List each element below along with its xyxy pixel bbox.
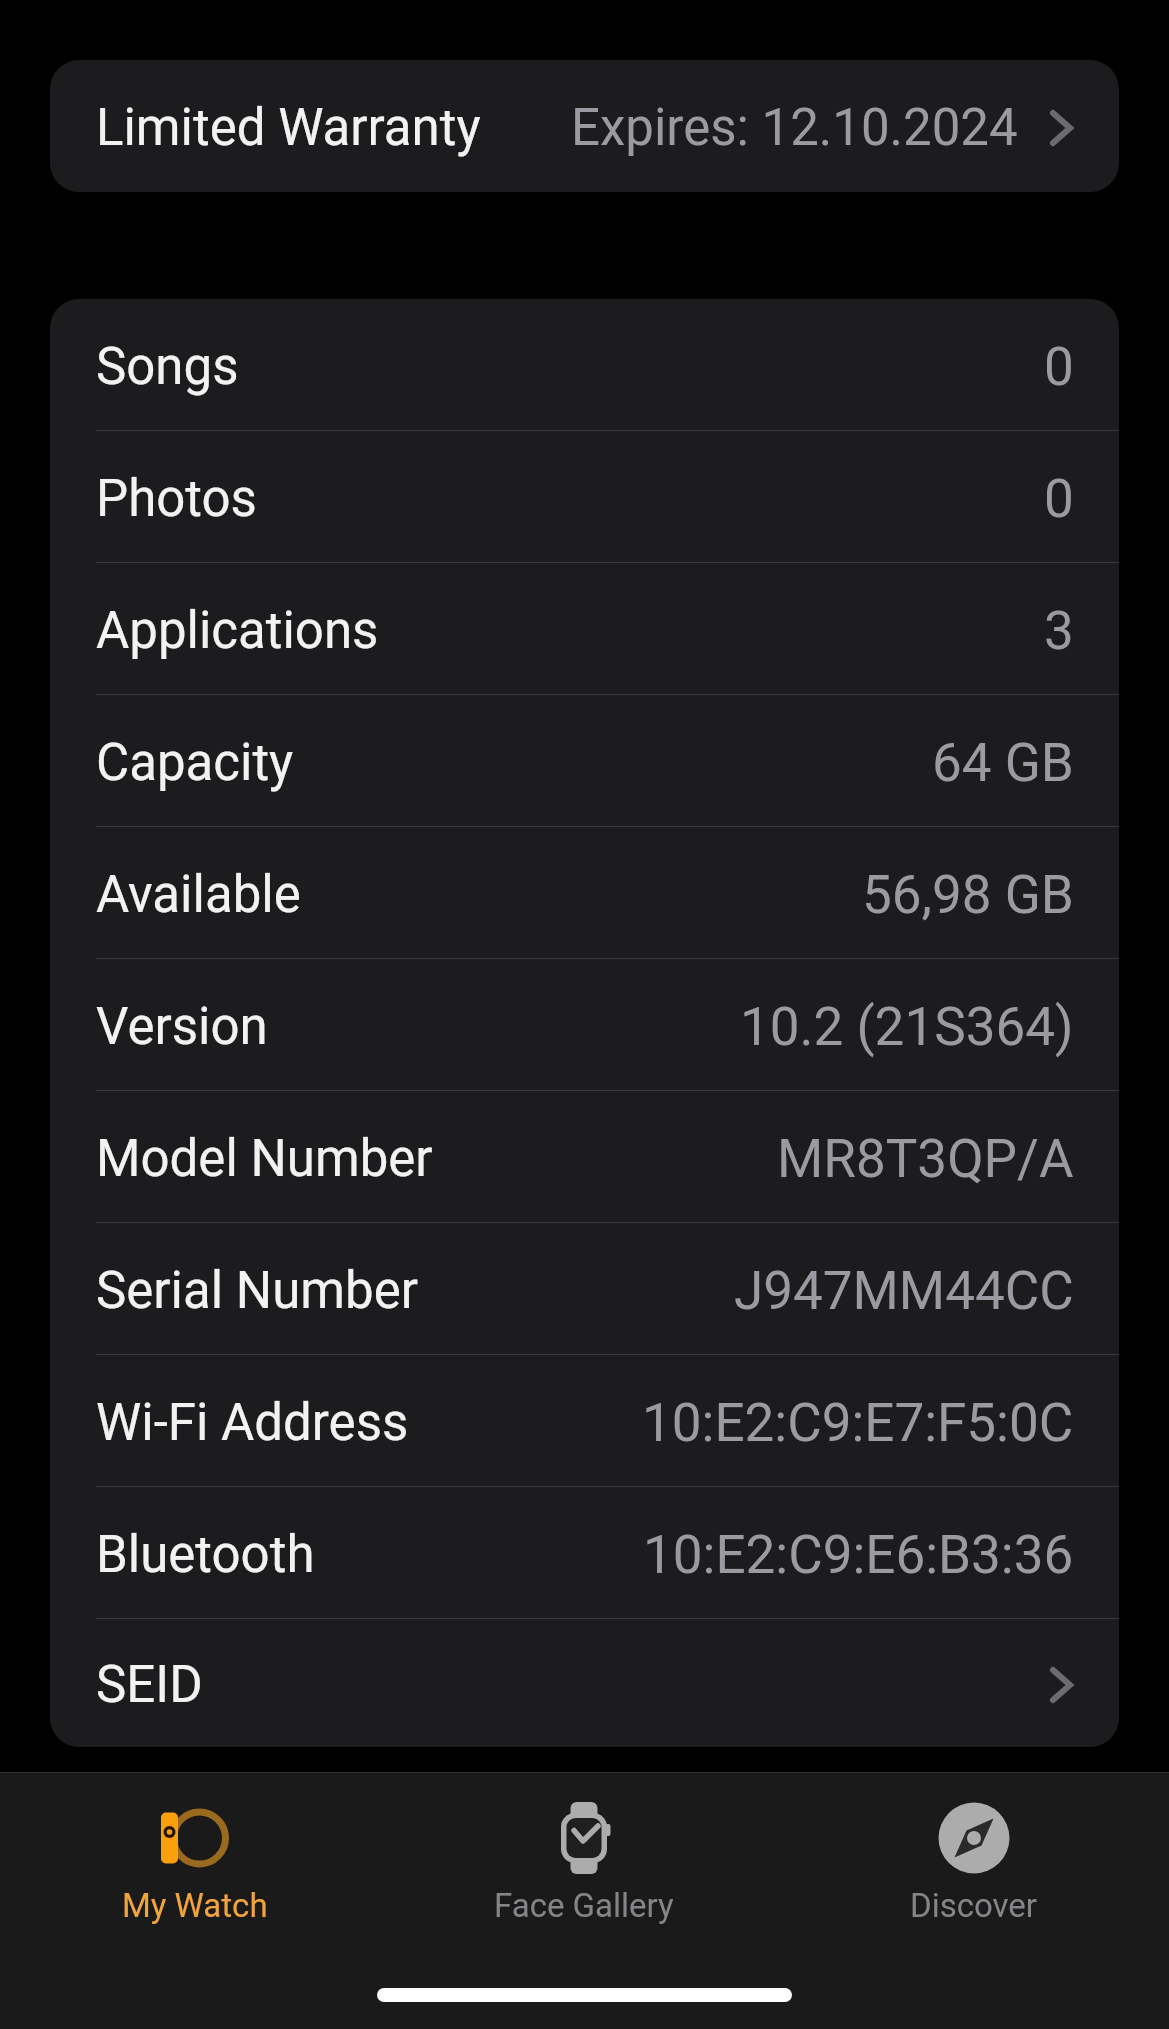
staticText: Version bbox=[96, 997, 268, 1057]
button[interactable]: Applications bbox=[50, 563, 1119, 695]
button[interactable]: Available bbox=[50, 827, 1119, 959]
button[interactable]: Serial Number bbox=[50, 1223, 1119, 1355]
staticText: MR8T3QP/A bbox=[777, 1128, 1074, 1190]
other: Discover bbox=[932, 1796, 1016, 1880]
button[interactable]: Model Number bbox=[50, 1091, 1119, 1223]
button[interactable]: Photos bbox=[50, 431, 1119, 563]
staticText: 64 GB bbox=[932, 732, 1074, 794]
button[interactable]: Limited Warranty bbox=[50, 60, 1119, 192]
staticText: Model Number bbox=[96, 1129, 433, 1189]
button[interactable]: SEID bbox=[50, 1619, 1119, 1747]
staticText: 56,98 GB bbox=[862, 864, 1074, 926]
staticText: Photos bbox=[96, 469, 257, 529]
staticText: Bluetooth bbox=[96, 1525, 315, 1585]
staticText: Limited Warranty bbox=[96, 98, 481, 158]
staticText: Songs bbox=[96, 337, 239, 397]
staticText: Expires: 12.10.2024 bbox=[571, 98, 1018, 158]
staticText: Wi-Fi Address bbox=[96, 1393, 409, 1453]
button[interactable]: Bluetooth bbox=[50, 1487, 1119, 1619]
staticText: 0 bbox=[1044, 468, 1074, 530]
staticText: My Watch bbox=[122, 1886, 268, 1925]
staticText: Capacity bbox=[96, 733, 294, 793]
button[interactable]: My Watch bbox=[0, 1773, 389, 2029]
staticText: SEID bbox=[96, 1655, 203, 1715]
button[interactable]: Songs bbox=[50, 299, 1119, 431]
staticText: 0 bbox=[1044, 336, 1074, 398]
staticText: Available bbox=[96, 865, 301, 925]
staticText: Serial Number bbox=[96, 1261, 418, 1321]
staticText: 10:E2:C9:E6:B3:36 bbox=[643, 1524, 1074, 1586]
button[interactable]: Wi-Fi Address bbox=[50, 1355, 1119, 1487]
staticText: 10:E2:C9:E7:F5:0C bbox=[642, 1392, 1074, 1454]
staticText: 10.2 (21S364) bbox=[740, 996, 1074, 1058]
other: Face Gallery bbox=[542, 1796, 626, 1880]
staticText: J947MM44CC bbox=[734, 1260, 1074, 1322]
button[interactable]: Face Gallery bbox=[389, 1773, 779, 2029]
staticText: Applications bbox=[96, 601, 379, 661]
other: My Watch bbox=[153, 1796, 237, 1880]
button[interactable]: Discover bbox=[779, 1773, 1169, 2029]
staticText: Face Gallery bbox=[494, 1886, 674, 1925]
staticText: Discover bbox=[910, 1886, 1038, 1925]
staticText: 3 bbox=[1044, 600, 1074, 662]
button[interactable]: Version bbox=[50, 959, 1119, 1091]
button[interactable]: Capacity bbox=[50, 695, 1119, 827]
